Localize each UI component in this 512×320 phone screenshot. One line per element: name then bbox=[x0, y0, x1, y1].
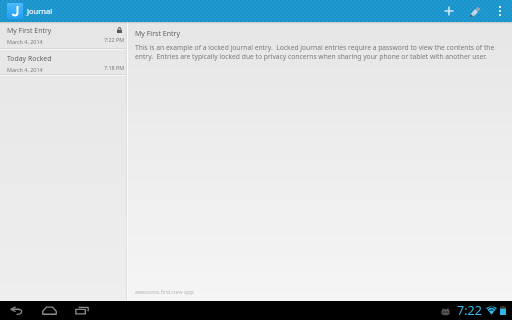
staticText: awesome.first.new app bbox=[135, 288, 194, 295]
staticText: March 4, 2014 bbox=[7, 66, 43, 73]
button[interactable]: Journal app icon bbox=[7, 3, 23, 19]
staticText: 7:22 PM bbox=[104, 36, 125, 43]
staticText: My First Entry bbox=[7, 26, 52, 35]
button[interactable]: My First Entry bbox=[0, 22, 128, 48]
button[interactable]: More options bbox=[489, 0, 511, 22]
button[interactable]: Recent apps bbox=[68, 301, 96, 320]
staticText: 7:22 bbox=[457, 302, 482, 319]
button[interactable]: Edit entry bbox=[463, 0, 487, 22]
staticText: 7:18 PM bbox=[104, 64, 125, 71]
staticText: Today Rocked bbox=[7, 54, 52, 63]
staticText: March 4, 2014 bbox=[7, 38, 43, 45]
button[interactable]: Add entry bbox=[437, 0, 461, 22]
staticText: This is an example of a locked journal e… bbox=[135, 43, 503, 60]
staticText: Journal bbox=[27, 6, 53, 16]
button[interactable]: Home bbox=[35, 301, 63, 320]
button[interactable]: Back bbox=[2, 301, 30, 320]
staticText: My First Entry bbox=[135, 29, 180, 39]
button[interactable]: Today Rocked bbox=[0, 50, 128, 74]
